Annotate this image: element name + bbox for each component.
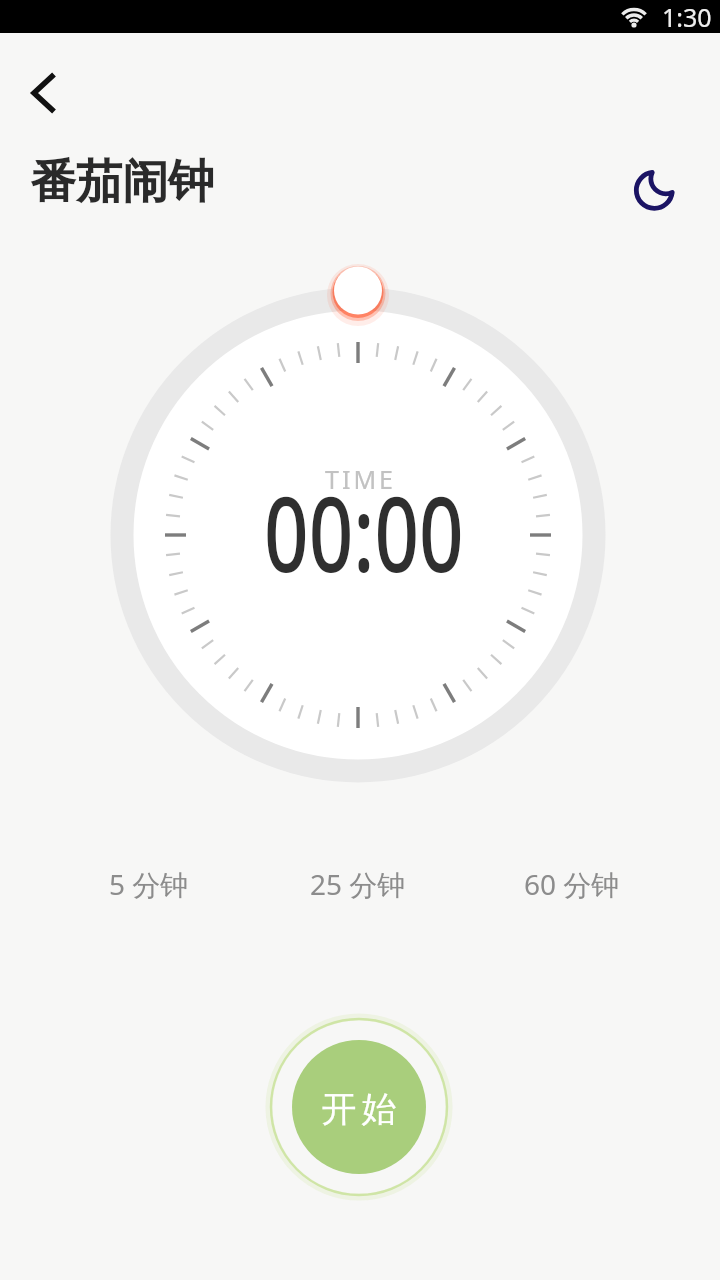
button[interactable]: 开始 xyxy=(293,1041,425,1173)
button[interactable] xyxy=(628,158,688,218)
staticText: 1:30 xyxy=(662,0,712,33)
staticText: 开始 xyxy=(319,1087,399,1131)
staticText: 00:00 xyxy=(264,462,464,602)
staticText: 5 分钟 xyxy=(109,865,189,903)
staticText: 番茄闹钟 xyxy=(30,153,214,211)
staticText: 60 分钟 xyxy=(524,865,620,903)
button[interactable]: 5 分钟 xyxy=(79,862,219,906)
button[interactable] xyxy=(16,65,72,121)
staticText: TIME xyxy=(325,462,396,492)
button[interactable]: 60 分钟 xyxy=(502,862,642,906)
staticText: 25 分钟 xyxy=(310,865,406,903)
button[interactable]: 25 分钟 xyxy=(288,862,428,906)
